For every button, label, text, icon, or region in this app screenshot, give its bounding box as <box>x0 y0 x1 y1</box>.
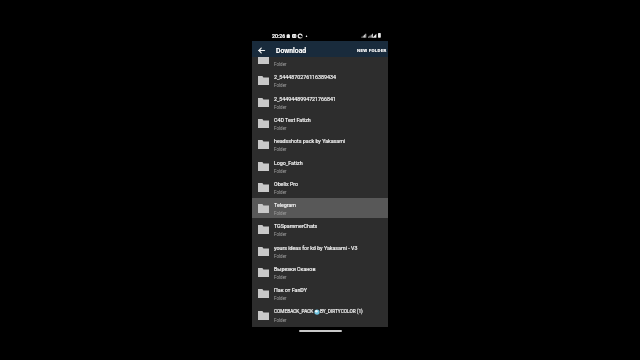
staticText: Folder <box>274 211 287 216</box>
staticText: Folder <box>274 232 287 237</box>
staticText: Folder <box>274 254 287 259</box>
button[interactable]: Back <box>253 42 270 58</box>
staticText: Folder <box>274 296 287 301</box>
button[interactable]: Telegram <box>252 198 388 219</box>
staticText: headsshots pack by Yakasami <box>274 138 346 144</box>
button[interactable]: TGSpammerChats <box>252 219 388 240</box>
staticText: Telegram <box>274 202 297 208</box>
staticText: NEW FOLDER <box>357 48 387 53</box>
button[interactable]: NEW FOLDER <box>354 42 390 58</box>
button[interactable]: Folder <box>252 57 388 70</box>
staticText: Download <box>276 47 307 55</box>
button[interactable]: C4D Text Fatizh <box>252 113 388 134</box>
staticText: TGSpammerChats <box>274 223 318 229</box>
staticText: Вырезки Сканов <box>274 266 316 272</box>
staticText: Folder <box>274 147 287 152</box>
button[interactable]: Пак от FanDY <box>252 283 388 304</box>
button[interactable]: Obelix Pro <box>252 177 388 198</box>
button[interactable]: Logo_Fatizh <box>252 156 388 177</box>
button[interactable]: COMEBACK_PACK <box>252 305 388 326</box>
button[interactable]: 2_5444870276116389434 <box>252 70 388 91</box>
staticText: Folder <box>274 126 287 131</box>
button[interactable]: 2_5449448994721766841 <box>252 92 388 113</box>
staticText: Пак от FanDY <box>274 287 307 293</box>
staticText: Logo_Fatizh <box>274 160 303 166</box>
staticText: Folder <box>274 105 287 110</box>
button[interactable]: headsshots pack by Yakasami <box>252 134 388 155</box>
button[interactable]: yours ideas for kd by Yakasami - V3 <box>252 241 388 262</box>
staticText: Folder <box>274 190 287 195</box>
staticText: Obelix Pro <box>274 181 299 187</box>
button[interactable]: Вырезки Сканов <box>252 262 388 283</box>
staticText: Folder <box>274 318 287 323</box>
staticText: 2_5449448994721766841 <box>274 96 336 102</box>
staticText: 20:26 <box>272 33 286 39</box>
staticText: C4D Text Fatizh <box>274 117 311 123</box>
staticText: Folder <box>274 169 287 174</box>
staticText: BY_DIRTYCOLOR (1) <box>320 309 363 315</box>
staticText: COMEBACK_PACK <box>274 309 314 315</box>
staticText: yours ideas for kd by Yakasami - V3 <box>274 245 358 251</box>
staticText: Folder <box>274 83 287 88</box>
staticText: Folder <box>274 275 287 280</box>
staticText: 2_5444870276116389434 <box>274 74 336 80</box>
staticText: Folder <box>274 62 287 67</box>
